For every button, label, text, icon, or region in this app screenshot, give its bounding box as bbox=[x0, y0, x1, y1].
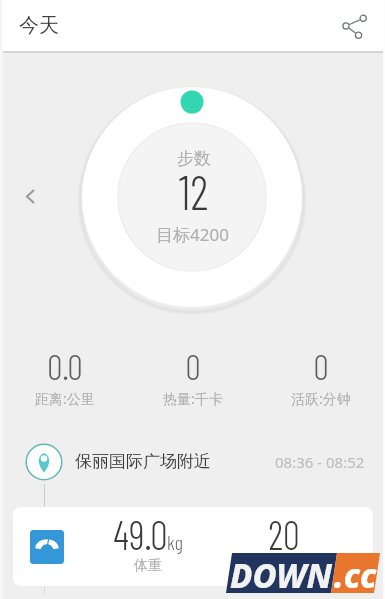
staticText: 目标4200 bbox=[156, 223, 229, 246]
staticText: 20 bbox=[259, 509, 309, 558]
staticText: 热量:千卡 bbox=[163, 389, 223, 408]
button[interactable]: Share bbox=[339, 10, 371, 42]
staticText: 0.0 bbox=[47, 344, 83, 387]
staticText: kg bbox=[167, 530, 183, 554]
staticText: 体重 bbox=[134, 557, 162, 575]
button[interactable]: Previous day bbox=[15, 181, 46, 212]
button[interactable]: 0.0 bbox=[0, 343, 129, 405]
button[interactable]: 保丽国际广场附近 bbox=[0, 439, 385, 484]
staticText: 12 bbox=[179, 162, 208, 220]
button[interactable]: 49.0 bbox=[13, 507, 373, 586]
staticText: 0 bbox=[313, 344, 329, 387]
staticText: 保丽国际广场附近 bbox=[75, 451, 211, 472]
staticText: 49.0 bbox=[113, 509, 168, 558]
staticText: 距离:公里 bbox=[35, 389, 95, 408]
staticText: 步数 bbox=[177, 148, 211, 169]
button[interactable]: 0 bbox=[257, 343, 385, 405]
staticText: 今天 bbox=[19, 13, 59, 38]
button[interactable]: 0 bbox=[129, 343, 257, 405]
staticText: 活跃:分钟 bbox=[291, 389, 351, 408]
staticText: DOWN bbox=[230, 553, 332, 598]
staticText: 0 bbox=[185, 344, 201, 387]
staticText: 08:36 - 08:52 bbox=[275, 452, 365, 472]
staticText: .cc bbox=[334, 553, 377, 598]
